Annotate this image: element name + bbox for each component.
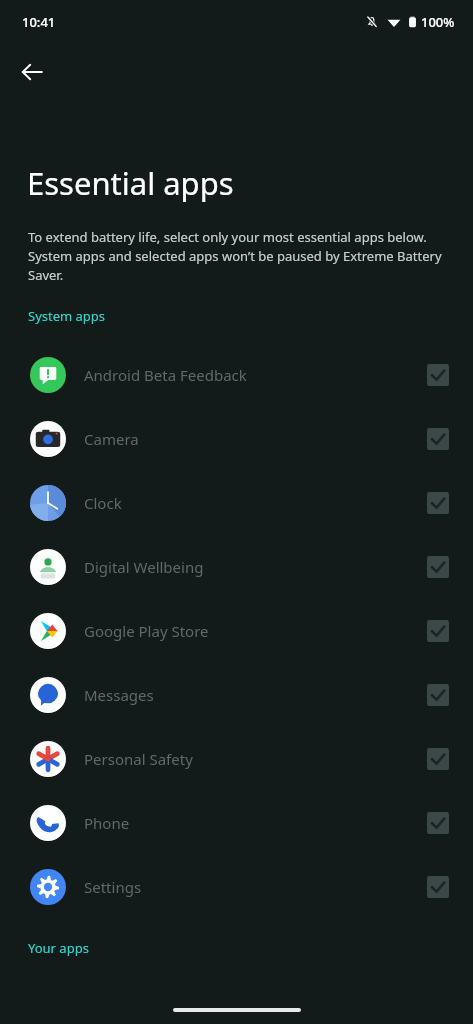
staticText: 10:41 bbox=[22, 13, 56, 31]
button[interactable]: Google Play Store bbox=[0, 599, 473, 663]
button[interactable]: Clock bbox=[0, 471, 473, 535]
button[interactable]: Camera bbox=[0, 407, 473, 471]
staticText: Essential apps bbox=[27, 162, 234, 204]
staticText: Digital Wellbeing bbox=[84, 557, 427, 577]
staticText: 100% bbox=[421, 13, 455, 31]
button[interactable]: Personal Safety bbox=[0, 727, 473, 791]
staticText: Camera bbox=[84, 429, 427, 449]
button[interactable]: Your apps bbox=[0, 935, 101, 961]
staticText: Messages bbox=[84, 685, 427, 705]
staticText: Settings bbox=[84, 877, 427, 897]
button[interactable]: Messages bbox=[0, 663, 473, 727]
button[interactable]: Android Beta Feedback bbox=[0, 343, 473, 407]
button[interactable]: Back bbox=[10, 50, 54, 94]
staticText: Google Play Store bbox=[84, 621, 427, 641]
staticText: Phone bbox=[84, 813, 427, 833]
staticText: Clock bbox=[84, 493, 427, 513]
staticText: To extend battery life, select only your… bbox=[28, 228, 451, 284]
staticText: System apps bbox=[28, 307, 106, 325]
button[interactable]: Phone bbox=[0, 791, 473, 855]
button[interactable]: Settings bbox=[0, 855, 473, 919]
staticText: Android Beta Feedback bbox=[84, 365, 427, 385]
staticText: Personal Safety bbox=[84, 749, 427, 769]
button[interactable]: Digital Wellbeing bbox=[0, 535, 473, 599]
